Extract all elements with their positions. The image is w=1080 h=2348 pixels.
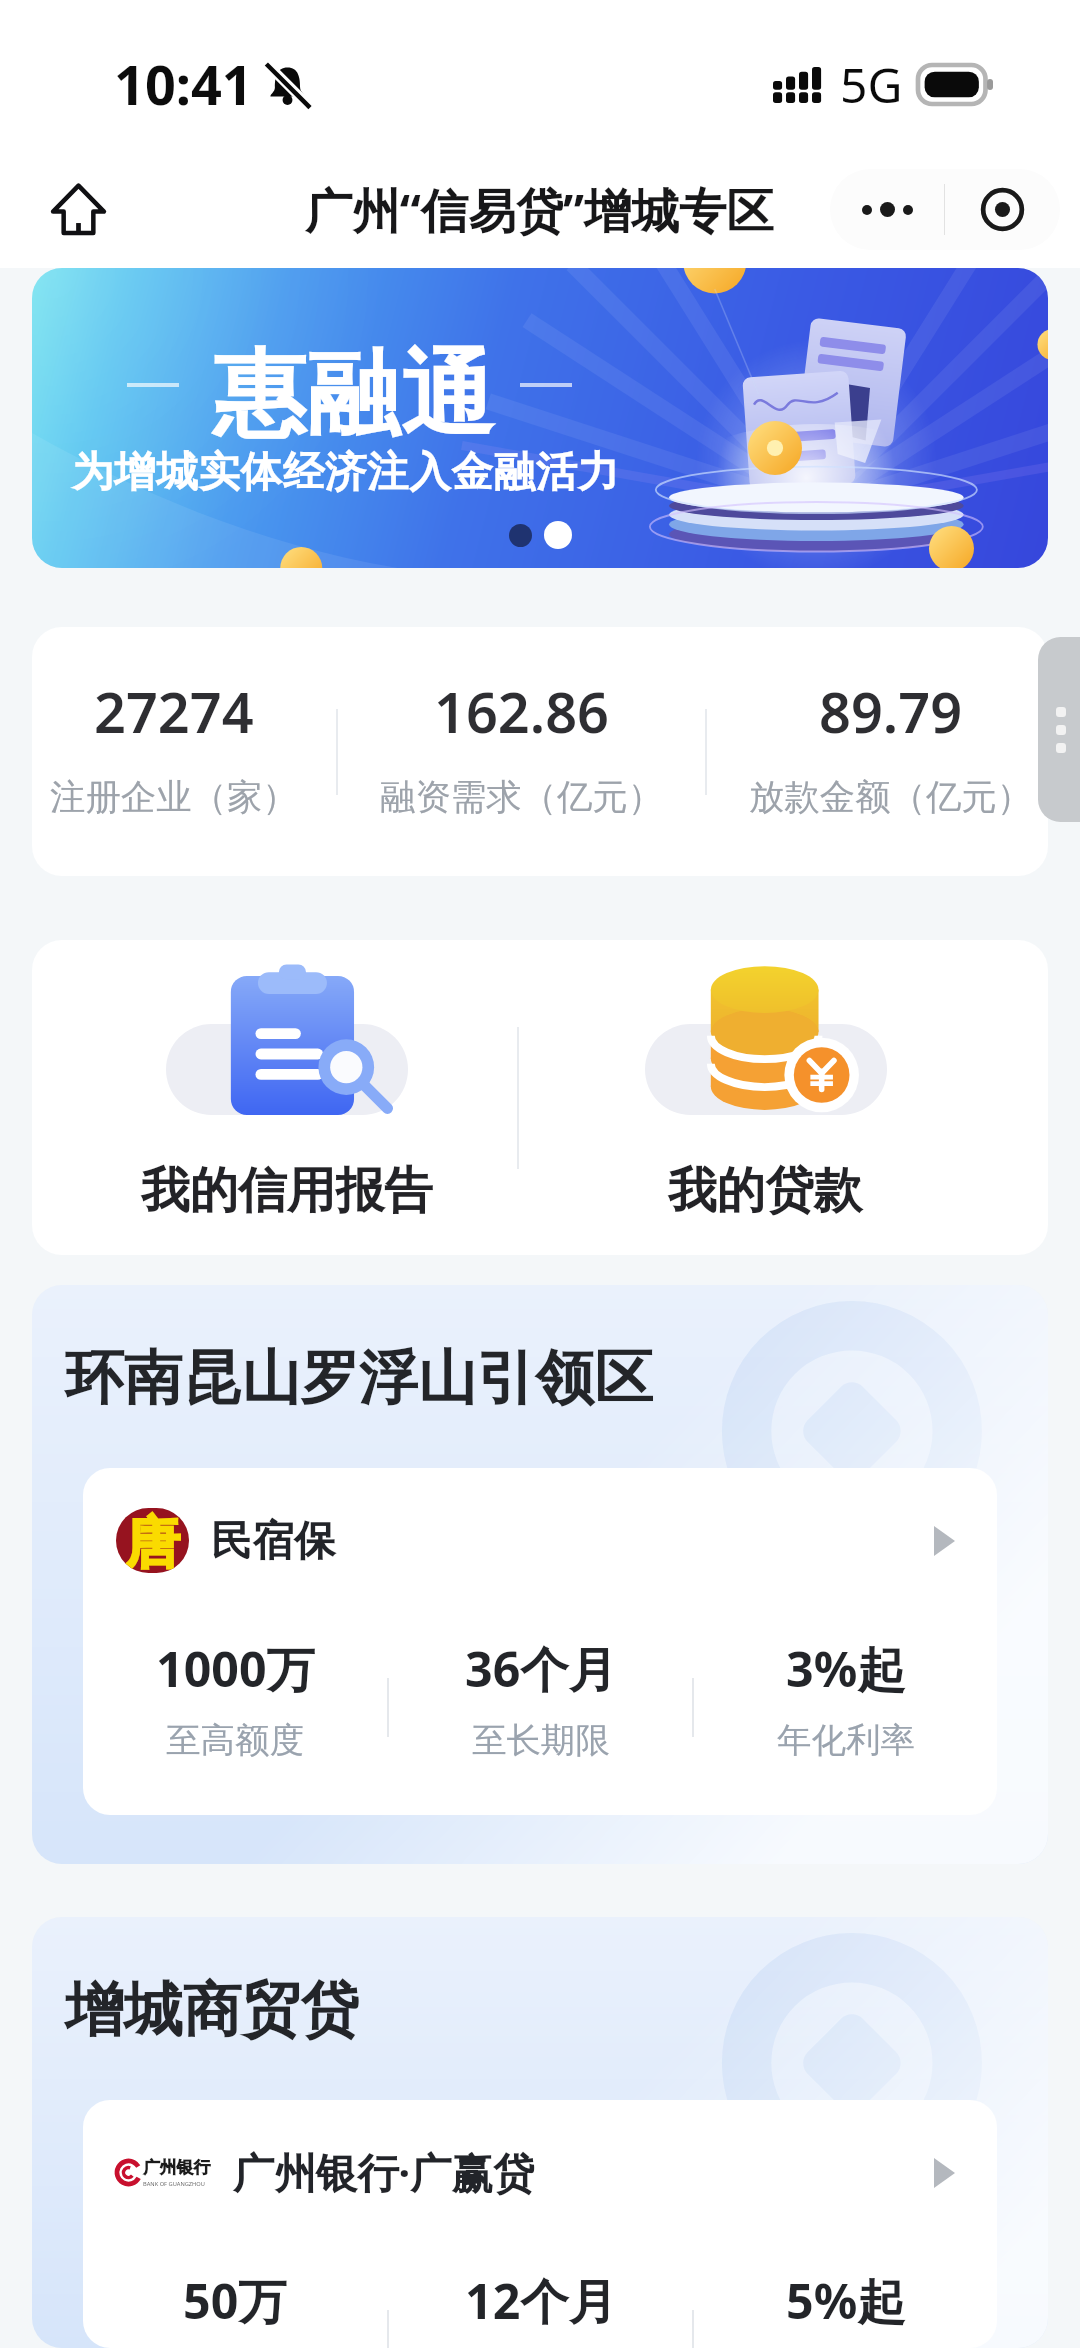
staticText: 89.79: [819, 673, 963, 749]
staticText: 50万: [183, 2267, 287, 2333]
staticText: 5%起: [786, 2267, 906, 2333]
staticText: 唐: [125, 1509, 181, 1573]
staticText: 年化利率: [777, 1719, 915, 1762]
staticText: BANK OF GUANGZHOU: [143, 2180, 205, 2188]
staticText: 我的贷款: [668, 1160, 863, 1221]
staticText: 注册企业（家）: [50, 775, 298, 820]
staticText: 为增城实体经济注入金融活力: [72, 446, 620, 498]
staticText: 广州银行: [143, 2157, 211, 2178]
staticText: 环南昆山罗浮山引领区: [65, 1341, 653, 1415]
staticText: 我的信用报告: [141, 1160, 433, 1221]
button[interactable]: 广州银行: [83, 2100, 997, 2348]
button[interactable]: 唐: [83, 1468, 997, 1815]
button[interactable]: 惠融通: [32, 268, 1048, 568]
staticText: 广州“信易贷”增城专区: [305, 177, 774, 242]
staticText: 10:41: [114, 47, 253, 121]
staticText: 增城商贸贷: [65, 1973, 359, 2047]
staticText: 12个月: [465, 2267, 617, 2333]
staticText: 广州银行·广赢贷: [233, 2144, 535, 2201]
staticText: 5G: [840, 52, 903, 117]
staticText: 至长期限: [472, 1719, 610, 1762]
button[interactable]: Home: [39, 170, 117, 248]
staticText: 至高额度: [166, 1719, 304, 1762]
button[interactable]: 我的贷款: [519, 940, 1048, 1255]
staticText: 放款金额（亿元）: [749, 775, 1033, 820]
staticText: 162.86: [434, 673, 609, 749]
button[interactable]: 我的信用报告: [32, 940, 517, 1255]
staticText: 1000万: [156, 1635, 315, 1701]
staticText: 民宿保: [211, 1515, 336, 1567]
button[interactable]: Drag handle: [1038, 637, 1080, 822]
button[interactable]: Close mini program: [945, 169, 1060, 250]
staticText: 36个月: [465, 1635, 617, 1701]
button[interactable]: More options: [830, 169, 944, 250]
staticText: 惠融通: [213, 336, 495, 453]
staticText: 融资需求（亿元）: [380, 775, 664, 820]
staticText: 3%起: [786, 1635, 906, 1701]
staticText: 27274: [94, 673, 254, 749]
